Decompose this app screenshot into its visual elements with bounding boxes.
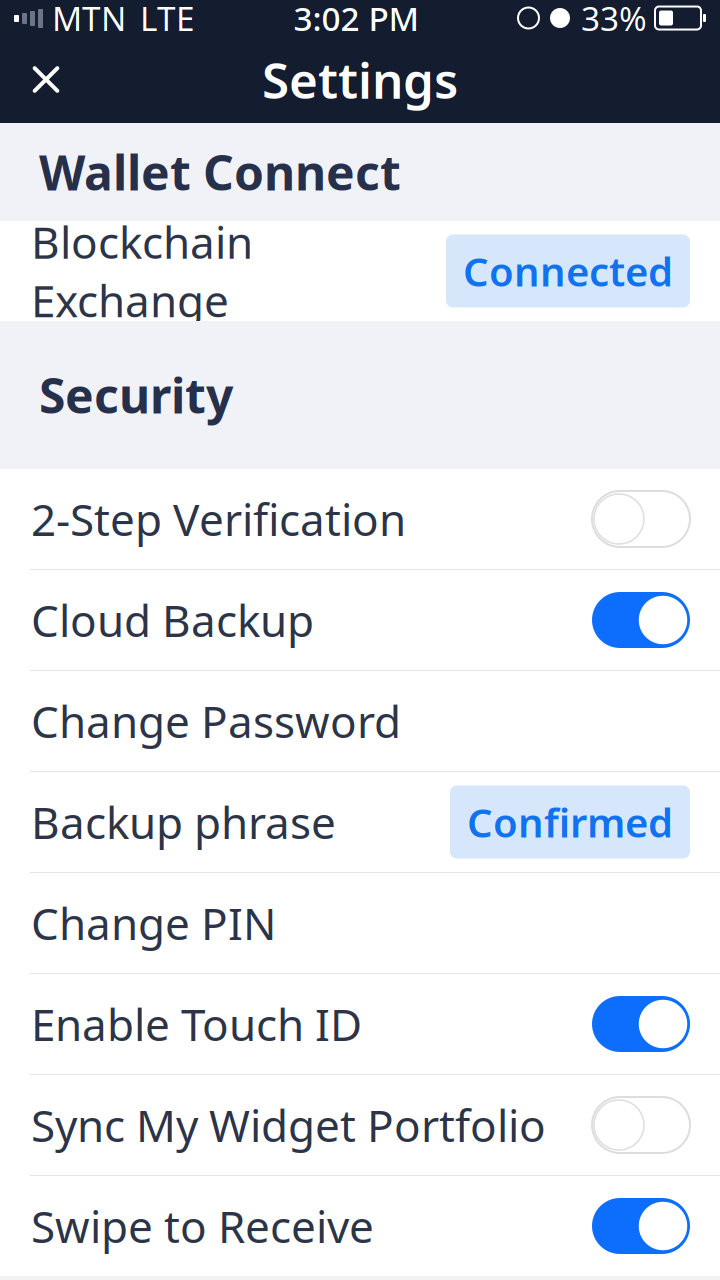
button[interactable]: Swipe to Receive	[0, 1176, 720, 1276]
staticText: Settings	[262, 47, 458, 112]
button[interactable]: Close	[13, 46, 79, 112]
button[interactable]: Change PIN	[0, 873, 720, 973]
button[interactable]: 2-Step Verification	[0, 469, 720, 569]
staticText: 2-Step Verification	[31, 490, 406, 548]
staticText: Enable Touch ID	[31, 995, 362, 1053]
staticText: Change Password	[31, 692, 401, 750]
staticText: Cloud Backup	[31, 591, 314, 649]
staticText: Change PIN	[31, 894, 276, 952]
staticText: Swipe to Receive	[31, 1197, 374, 1255]
staticText: 33%	[581, 0, 647, 40]
staticText: Backup phrase	[31, 793, 336, 851]
button[interactable]: Enable Touch ID	[0, 974, 720, 1074]
staticText: Sync My Widget Portfolio	[31, 1096, 546, 1154]
staticText: Connected	[463, 244, 673, 297]
button[interactable]: Backup phrase	[0, 772, 720, 872]
staticText: LTE	[140, 0, 195, 40]
button[interactable]: Sync My Widget Portfolio	[0, 1075, 720, 1175]
staticText: 3:02 PM	[293, 0, 419, 40]
staticText: Blockchain Exchange	[31, 213, 253, 329]
button[interactable]: Blockchain Exchange	[0, 221, 720, 321]
staticText: Security	[39, 363, 233, 427]
staticText: Confirmed	[467, 795, 673, 848]
staticText: Wallet Connect	[39, 140, 401, 204]
staticText: MTN	[52, 0, 126, 40]
button[interactable]: Change Password	[0, 671, 720, 771]
button[interactable]: Cloud Backup	[0, 570, 720, 670]
